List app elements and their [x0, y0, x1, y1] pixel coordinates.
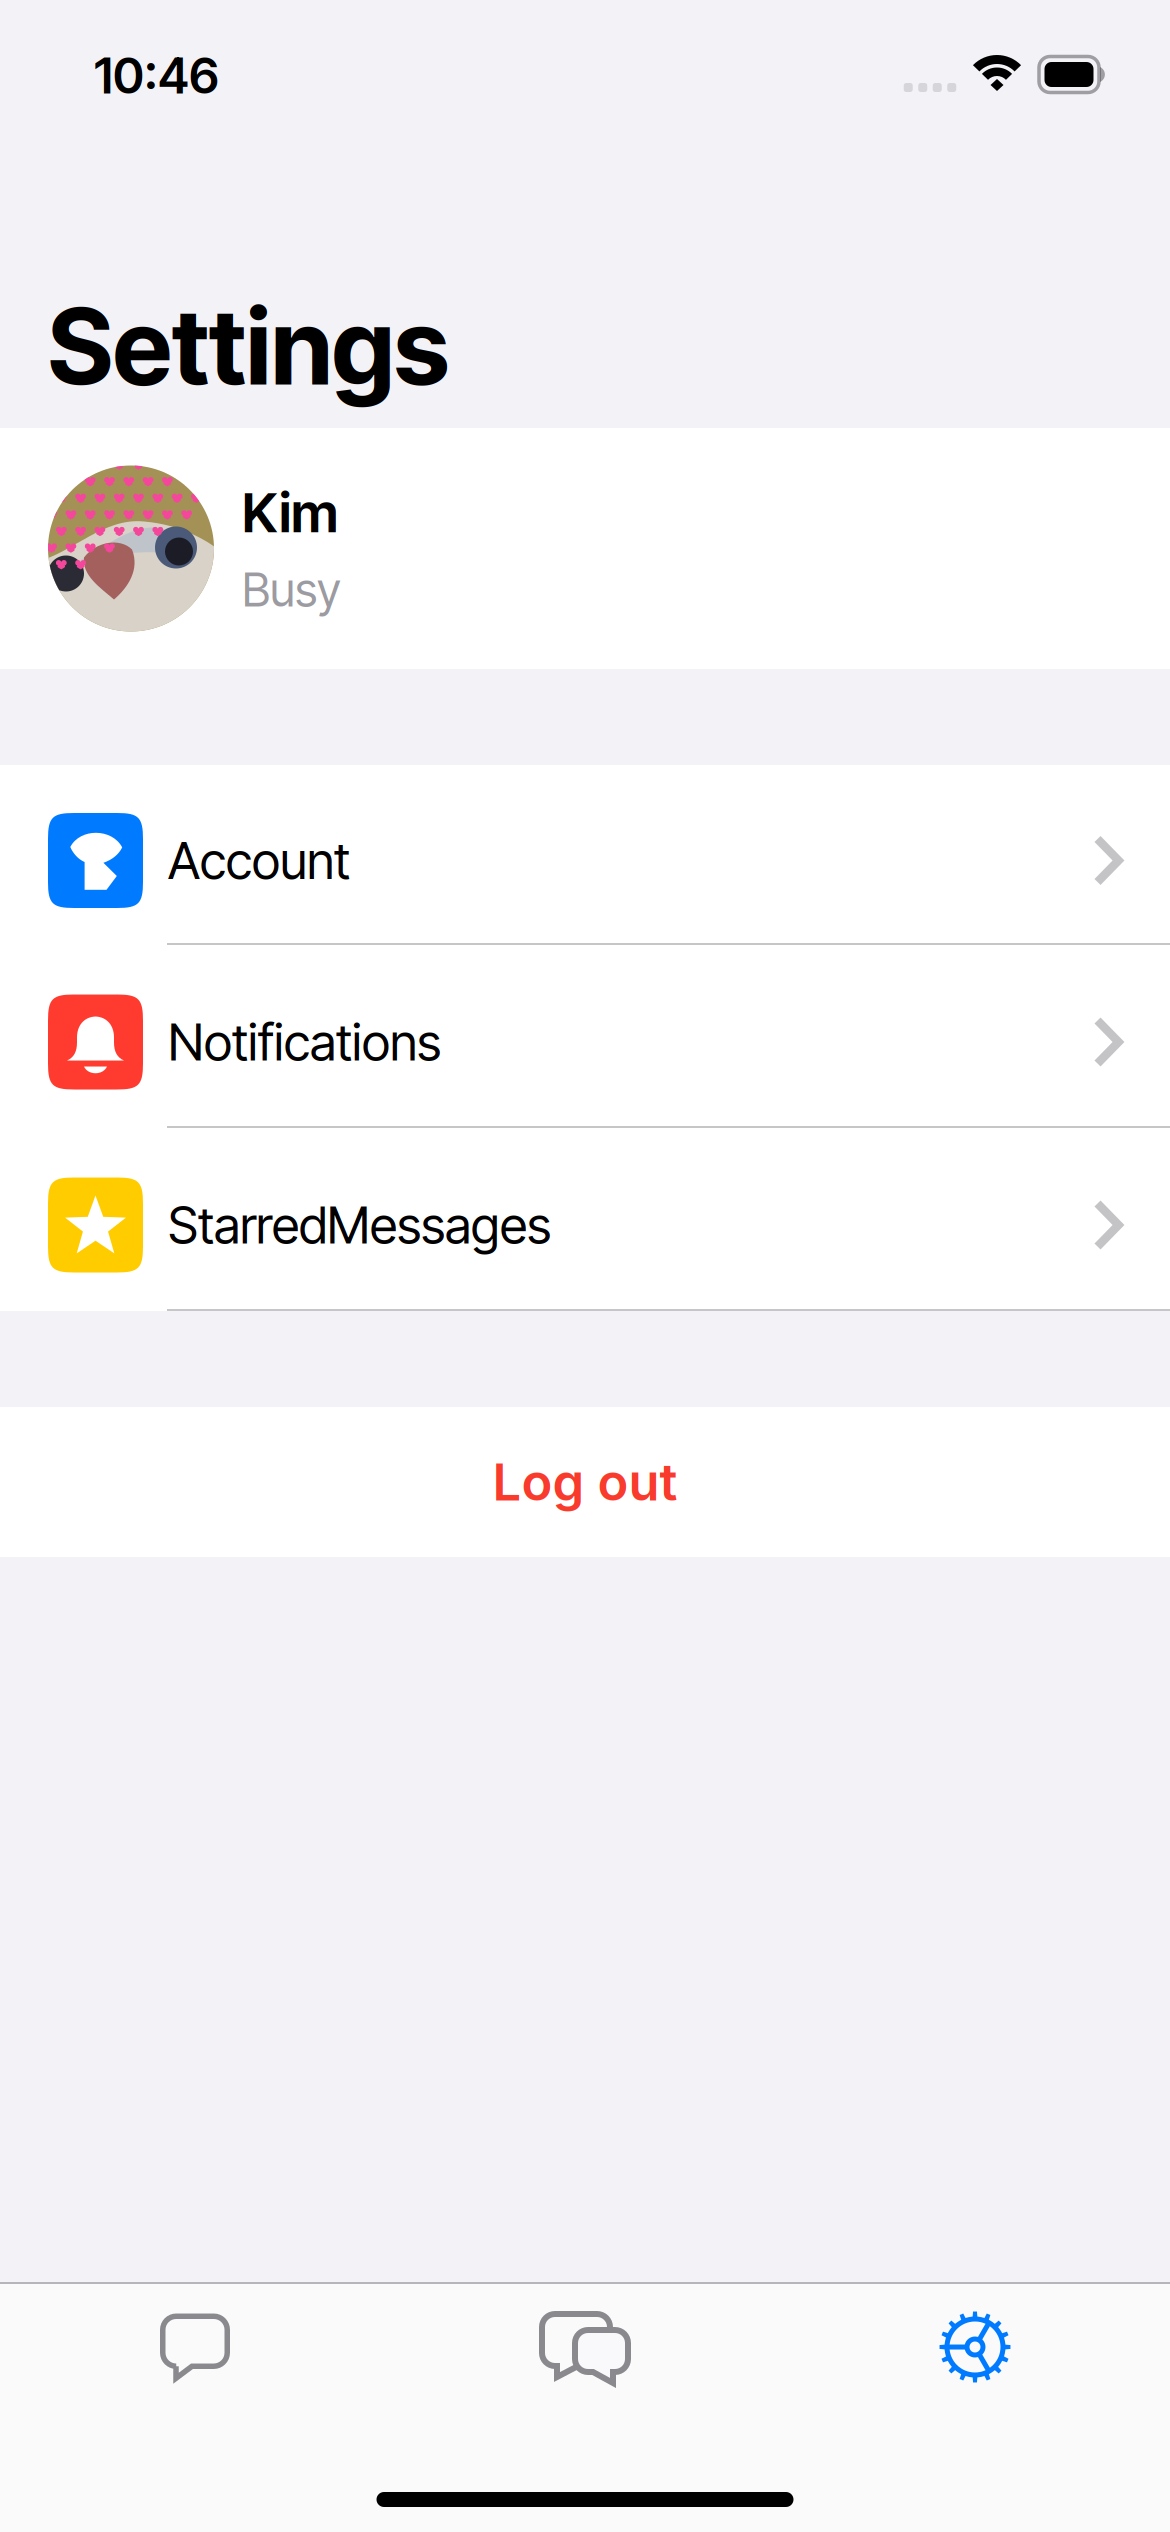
button[interactable]: Notifications	[0, 945, 1170, 1128]
staticText: 10:46	[94, 46, 219, 105]
button[interactable]: Log out	[0, 1407, 1170, 1557]
button[interactable]: Settings	[780, 2284, 1170, 2410]
button[interactable]: Account	[0, 765, 1170, 945]
button[interactable]: Groups	[390, 2284, 780, 2410]
button[interactable]: StarredMessages	[0, 1128, 1170, 1311]
staticText: Log out	[492, 1451, 677, 1513]
staticText: Busy	[242, 561, 341, 618]
staticText: Notifications	[168, 1011, 441, 1073]
button[interactable]: Kim	[0, 428, 1170, 669]
staticText: Settings	[48, 284, 449, 409]
staticText: Account	[168, 830, 350, 891]
staticText: Kim	[242, 479, 338, 545]
button[interactable]: Chats	[0, 2284, 390, 2410]
staticText: StarredMessages	[168, 1194, 551, 1256]
